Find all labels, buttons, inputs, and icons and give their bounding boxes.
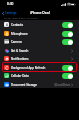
button[interactable]: Toggle on xyxy=(62,39,73,45)
button[interactable]: Toggle on xyxy=(62,31,73,37)
button[interactable]: Siri & Search xyxy=(0,46,79,55)
staticText: iCloud Drive xyxy=(54,83,70,87)
staticText: iPhone Deal xyxy=(30,10,50,15)
button[interactable]: Camera xyxy=(0,37,79,46)
button[interactable]: Microphone xyxy=(0,29,79,38)
staticText: Cellular Data xyxy=(11,74,29,78)
button[interactable]: Settings xyxy=(0,9,19,17)
staticText: Document Storage xyxy=(11,83,37,87)
button[interactable]: Notifications xyxy=(0,54,79,63)
button[interactable]: Toggle on xyxy=(62,65,73,71)
staticText: Notifications xyxy=(11,57,29,61)
staticText: 8:30 xyxy=(7,2,14,6)
staticText: Settings xyxy=(5,11,17,15)
button[interactable]: Contacts xyxy=(0,20,79,29)
staticText: Siri & Search xyxy=(11,49,29,53)
button[interactable]: Background App Refresh xyxy=(0,63,79,72)
button[interactable]: Toggle on xyxy=(62,73,73,79)
button[interactable]: Toggle on xyxy=(62,22,73,28)
button[interactable]: Document Storage xyxy=(0,80,79,89)
staticText: Contacts xyxy=(11,23,24,27)
button[interactable]: Cellular Data xyxy=(0,71,79,80)
staticText: Camera xyxy=(11,40,22,44)
staticText: ALLOW IPHONE DEAL TO ACCESS xyxy=(4,17,38,20)
staticText: Background App Refresh xyxy=(11,66,46,70)
staticText: Microphone xyxy=(11,32,28,36)
